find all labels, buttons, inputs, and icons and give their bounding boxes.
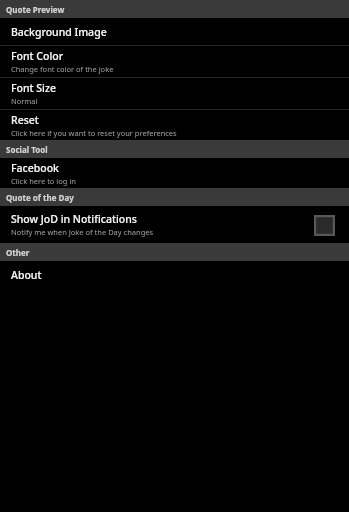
- button[interactable]: Font Size: [0, 78, 349, 109]
- staticText: About: [11, 268, 42, 282]
- staticText: Facebook: [11, 161, 59, 175]
- staticText: Background Image: [11, 25, 107, 39]
- staticText: Quote of the Day: [6, 192, 74, 203]
- button[interactable]: Background Image: [0, 18, 349, 45]
- button[interactable]: Show JoD in Notifications: [0, 206, 349, 243]
- staticText: Click here if you want to reset your pre…: [11, 128, 177, 138]
- staticText: Change font color of the joke: [11, 64, 114, 74]
- staticText: Reset: [11, 113, 39, 127]
- button[interactable]: Facebook: [0, 158, 349, 188]
- staticText: Show JoD in Notifications: [11, 212, 137, 226]
- staticText: Click here to log in: [11, 176, 76, 186]
- button[interactable]: Show JoD in Notifications checkbox: [309, 210, 339, 240]
- staticText: Other: [6, 247, 30, 258]
- staticText: Font Size: [11, 81, 56, 95]
- staticText: Quote Preview: [6, 4, 65, 15]
- staticText: Normal: [11, 96, 38, 106]
- button[interactable]: Reset: [0, 110, 349, 140]
- staticText: Social Tool: [6, 144, 48, 155]
- staticText: Font Color: [11, 49, 64, 63]
- staticText: Notify me when Joke of the Day changes: [11, 227, 154, 237]
- button[interactable]: Font Color: [0, 46, 349, 77]
- button[interactable]: About: [0, 261, 349, 288]
